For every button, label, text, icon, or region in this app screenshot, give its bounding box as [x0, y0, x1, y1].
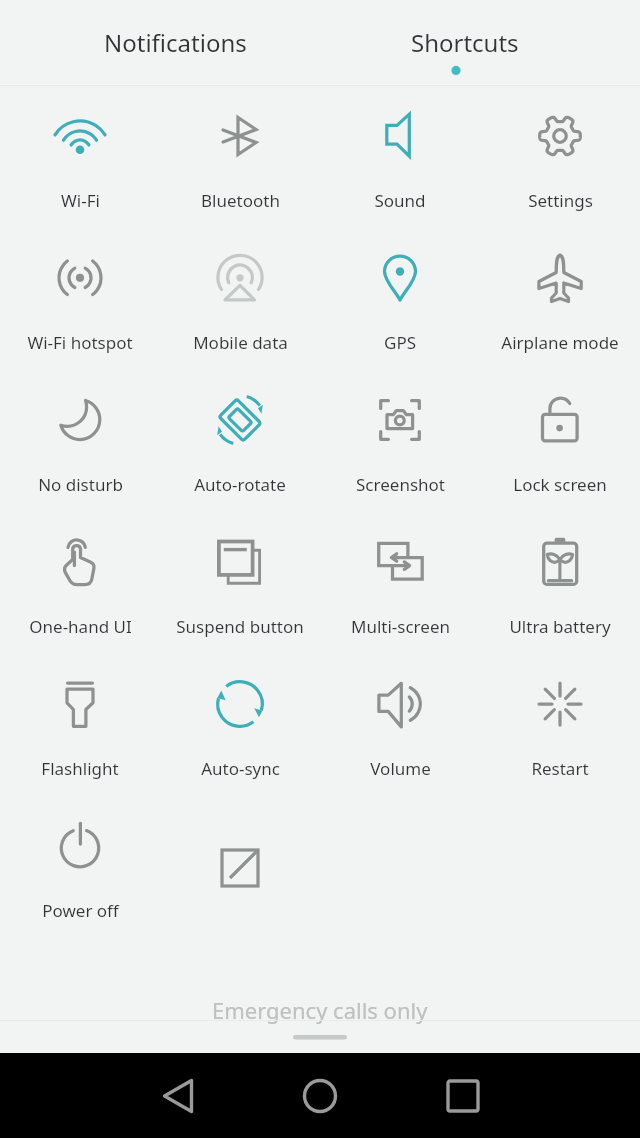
- button[interactable]: Multi-screen: [320, 512, 480, 654]
- button[interactable]: Bluetooth: [160, 86, 320, 228]
- staticText: Power off: [42, 899, 119, 922]
- button[interactable]: Shortcuts: [320, 0, 610, 86]
- button[interactable]: Recents: [427, 1060, 499, 1132]
- staticText: Multi-screen: [351, 615, 450, 638]
- staticText: Auto-sync: [201, 757, 280, 780]
- button[interactable]: Auto-rotate: [160, 370, 320, 512]
- button[interactable]: Restart: [480, 654, 640, 796]
- staticText: Wi-Fi hotspot: [27, 331, 133, 354]
- staticText: Bluetooth: [201, 189, 280, 212]
- staticText: Auto-rotate: [194, 473, 286, 496]
- staticText: Airplane mode: [501, 331, 619, 354]
- button[interactable]: Wi-Fi hotspot: [0, 228, 160, 370]
- staticText: Notifications: [104, 26, 247, 59]
- staticText: Settings: [528, 189, 593, 212]
- button[interactable]: Wi-Fi: [0, 86, 160, 228]
- staticText: Shortcuts: [411, 26, 519, 59]
- staticText: Ultra battery: [509, 615, 611, 638]
- button[interactable]: [160, 796, 320, 938]
- button[interactable]: Sound: [320, 86, 480, 228]
- button[interactable]: One-hand UI: [0, 512, 160, 654]
- button[interactable]: Suspend button: [160, 512, 320, 654]
- staticText: Lock screen: [513, 473, 607, 496]
- button[interactable]: Back: [142, 1060, 214, 1132]
- staticText: Wi-Fi: [61, 189, 100, 212]
- staticText: Restart: [531, 757, 589, 780]
- button[interactable]: Home: [284, 1060, 356, 1132]
- staticText: Volume: [370, 757, 431, 780]
- button[interactable]: GPS: [320, 228, 480, 370]
- staticText: One-hand UI: [29, 615, 132, 638]
- staticText: Screenshot: [356, 473, 445, 496]
- button[interactable]: Mobile data: [160, 228, 320, 370]
- staticText: Emergency calls only: [212, 995, 428, 1025]
- button[interactable]: Settings: [480, 86, 640, 228]
- button[interactable]: Flashlight: [0, 654, 160, 796]
- button[interactable]: Notifications: [30, 0, 320, 86]
- button[interactable]: Lock screen: [480, 370, 640, 512]
- staticText: Mobile data: [193, 331, 288, 354]
- staticText: Sound: [374, 189, 426, 212]
- button[interactable]: Screenshot: [320, 370, 480, 512]
- button[interactable]: Airplane mode: [480, 228, 640, 370]
- staticText: No disturb: [38, 473, 123, 496]
- staticText: Suspend button: [176, 615, 304, 638]
- staticText: GPS: [384, 331, 416, 354]
- button[interactable]: Auto-sync: [160, 654, 320, 796]
- button[interactable]: Power off: [0, 796, 160, 938]
- staticText: Flashlight: [41, 757, 119, 780]
- button[interactable]: Volume: [320, 654, 480, 796]
- button[interactable]: No disturb: [0, 370, 160, 512]
- button[interactable]: Ultra battery: [480, 512, 640, 654]
